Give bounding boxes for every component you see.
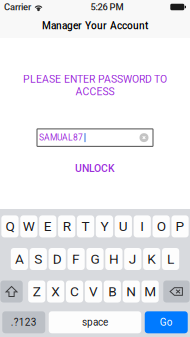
staticText: Q (5, 218, 14, 234)
button[interactable]: F (67, 248, 85, 270)
staticText: U (119, 218, 128, 234)
button[interactable]: Q (1, 215, 19, 237)
staticText: S (34, 251, 42, 267)
staticText: SAMUAL87 (39, 133, 83, 143)
staticText: PLEASE ENTER PASSWORD TO (23, 73, 167, 85)
staticText: Z (33, 283, 41, 299)
staticText: E (44, 218, 52, 234)
staticText: A (15, 251, 24, 267)
staticText: K (147, 251, 156, 267)
staticText: F (72, 251, 80, 267)
button[interactable]: .?123 (2, 311, 45, 333)
staticText: .?123 (11, 316, 37, 328)
button[interactable]: H (105, 248, 122, 270)
button[interactable]: B (104, 280, 121, 302)
staticText: G (90, 251, 99, 267)
button[interactable]: N (123, 280, 140, 302)
staticText: T (82, 218, 90, 234)
staticText: H (109, 251, 119, 267)
button[interactable]: Shift (0, 280, 23, 302)
button[interactable]: P (171, 215, 189, 237)
button[interactable]: S (30, 248, 47, 270)
button[interactable]: A (11, 248, 28, 270)
button[interactable]: L (162, 248, 179, 270)
staticText: Carrier (4, 1, 31, 12)
staticText: X (51, 283, 60, 299)
staticText: ACCESS (75, 86, 114, 98)
button[interactable]: Z (28, 280, 45, 302)
staticText: UNLOCK (75, 162, 115, 175)
button[interactable]: U (115, 215, 132, 237)
button[interactable]: Go (145, 311, 188, 333)
button[interactable]: Y (96, 215, 113, 237)
staticText: I (140, 218, 144, 234)
button[interactable]: W (20, 215, 37, 237)
button[interactable]: SAMUAL87 (37, 129, 153, 146)
staticText: Go (160, 316, 173, 328)
button[interactable]: E (39, 215, 56, 237)
staticText: space (82, 316, 108, 328)
button[interactable]: K (143, 248, 160, 270)
staticText: B (108, 283, 116, 299)
button[interactable]: UNLOCK (72, 159, 118, 178)
button[interactable]: space (49, 311, 141, 333)
staticText: O (157, 218, 166, 234)
staticText: N (126, 283, 136, 299)
button[interactable]: Delete (163, 280, 190, 302)
button[interactable]: X (47, 280, 64, 302)
button[interactable]: T (77, 215, 94, 237)
staticText: W (23, 218, 35, 234)
staticText: M (144, 283, 156, 299)
button[interactable]: V (85, 280, 102, 302)
button[interactable]: G (86, 248, 104, 270)
staticText: Manager Your Account (42, 20, 148, 32)
staticText: 5:26 PM (90, 1, 123, 12)
staticText: J (129, 251, 137, 267)
staticText: V (89, 283, 98, 299)
button[interactable]: R (58, 215, 75, 237)
button[interactable]: I (134, 215, 151, 237)
button[interactable]: J (124, 248, 141, 270)
button[interactable]: D (49, 248, 66, 270)
staticText: C (70, 283, 79, 299)
button[interactable]: O (153, 215, 170, 237)
staticText: D (53, 251, 62, 267)
staticText: Y (100, 218, 108, 234)
button[interactable]: C (66, 280, 83, 302)
staticText: L (167, 251, 174, 267)
button[interactable]: M (142, 280, 159, 302)
staticText: R (63, 218, 71, 234)
staticText: P (176, 218, 185, 234)
